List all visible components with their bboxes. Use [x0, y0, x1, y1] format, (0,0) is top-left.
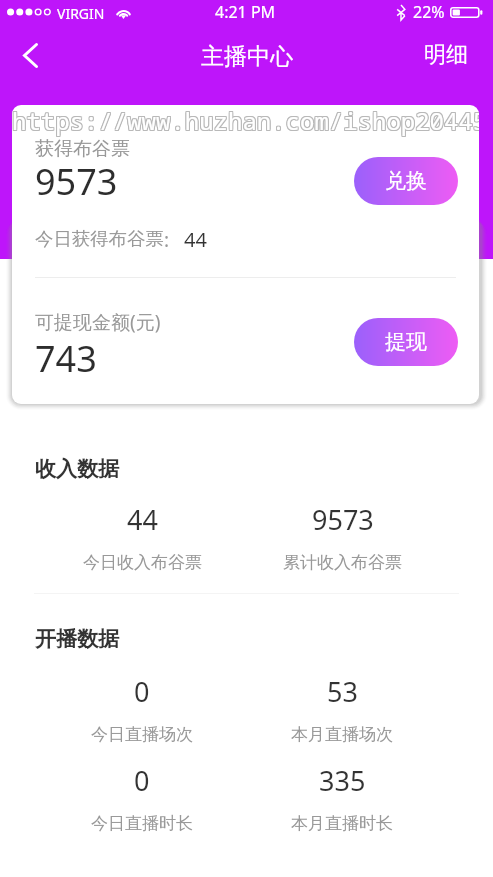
staticText: 22%	[413, 1, 445, 23]
button[interactable]: 9573	[272, 501, 412, 573]
staticText: 0	[134, 673, 150, 710]
staticText: https://www.huzhan.com/ishop20445	[13, 105, 479, 136]
button[interactable]: Back	[2, 26, 58, 84]
staticText: 今日直播时长	[91, 813, 193, 834]
staticText: 主播中心	[201, 42, 293, 71]
staticText: 743	[35, 334, 97, 383]
staticText: 44	[127, 501, 158, 538]
staticText: https://www.huzhan.com/ishop20445	[13, 105, 479, 137]
staticText: 本月直播场次	[291, 724, 393, 745]
button[interactable]: 提现	[354, 318, 458, 366]
staticText: 9573	[35, 157, 118, 206]
button[interactable]: 335	[272, 762, 412, 834]
staticText: 本月直播时长	[291, 813, 393, 834]
staticText: 明细	[424, 41, 468, 69]
staticText: 今日收入布谷票	[83, 552, 202, 573]
staticText: 9573	[312, 501, 374, 538]
staticText: 44	[184, 226, 207, 253]
staticText: 53	[327, 673, 358, 710]
staticText: https://www.huzhan.com/ishop20445	[12, 105, 479, 136]
staticText: https://www.huzhan.com/ishop20445	[12, 105, 478, 136]
staticText: 今日获得布谷票	[35, 227, 164, 250]
button[interactable]: 0	[72, 673, 212, 745]
staticText: 收入数据	[35, 456, 119, 482]
staticText: 累计收入布谷票	[283, 552, 402, 573]
staticText: https://www.huzhan.com/ishop20445	[12, 105, 479, 138]
staticText: 可提现金额(元)	[35, 309, 161, 335]
staticText: VIRGIN	[57, 4, 105, 23]
staticText: 提现	[385, 329, 427, 355]
staticText: 0	[134, 762, 150, 799]
button[interactable]: 44	[72, 501, 212, 573]
staticText: 4:21 PM	[215, 1, 276, 23]
staticText: https://www.huzhan.com/ishop20445	[13, 105, 479, 138]
staticText: 开播数据	[35, 626, 119, 652]
staticText: https://www.huzhan.com/ishop20445	[12, 105, 478, 137]
button[interactable]: 兑换	[354, 157, 458, 205]
staticText: https://www.huzhan.com/ishop20445	[12, 105, 478, 138]
staticText: 335	[319, 762, 366, 799]
button[interactable]: 明细	[399, 26, 493, 84]
staticText: 获得布谷票	[35, 137, 130, 161]
staticText: 兑换	[385, 168, 427, 194]
staticText: :	[164, 227, 170, 253]
staticText: https://www.huzhan.com/ishop20445	[12, 105, 479, 137]
button[interactable]: 53	[272, 673, 412, 745]
button[interactable]: 0	[72, 762, 212, 834]
staticText: 今日直播场次	[91, 724, 193, 745]
